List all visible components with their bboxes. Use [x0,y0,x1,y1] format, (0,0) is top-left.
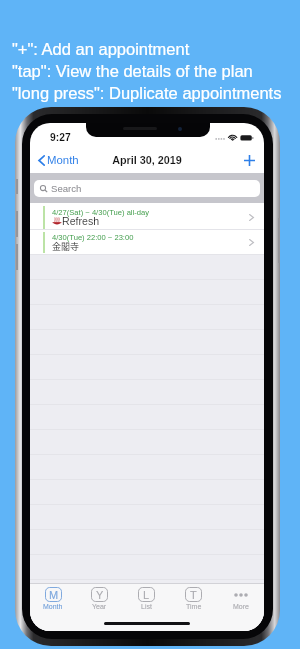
staticText: List [141,603,152,611]
button[interactable]: 4/27(Sat) ~ 4/30(Tue) all-day [30,204,264,230]
staticText: Search [51,183,82,194]
staticText: M [49,589,59,601]
staticText: Refresh [62,215,100,227]
staticText: April 30, 2019 [30,154,264,166]
staticText: Year [92,603,107,611]
staticText: L [143,589,150,601]
staticText: "tap": View the details of the plan [12,62,253,80]
staticText: T [190,589,197,601]
button[interactable]: Month [38,151,79,169]
button[interactable]: Month [30,587,76,611]
button[interactable]: Add an appointment [236,147,262,173]
staticText: Month [47,154,79,167]
staticText: Time [186,603,202,611]
staticText: 4/30(Tue) 22:00 ~ 23:00 [52,233,134,241]
staticText: 金閣寺 [52,240,80,253]
staticText: "long press": Duplicate appointments [12,84,282,102]
staticText: "+": Add an appointment [12,40,190,58]
button[interactable]: More [217,587,264,611]
staticText: 9:27 [50,132,71,144]
button[interactable]: Time [170,587,217,611]
button[interactable]: Search [34,180,260,197]
button[interactable]: 4/30(Tue) 22:00 ~ 23:00 [30,230,264,255]
staticText: Y [96,589,104,601]
button[interactable]: List [123,587,170,611]
staticText: More [233,603,249,611]
staticText: Month [43,603,63,611]
button[interactable]: Year [76,587,123,611]
staticText: 4/27(Sat) ~ 4/30(Tue) all-day [52,208,150,216]
